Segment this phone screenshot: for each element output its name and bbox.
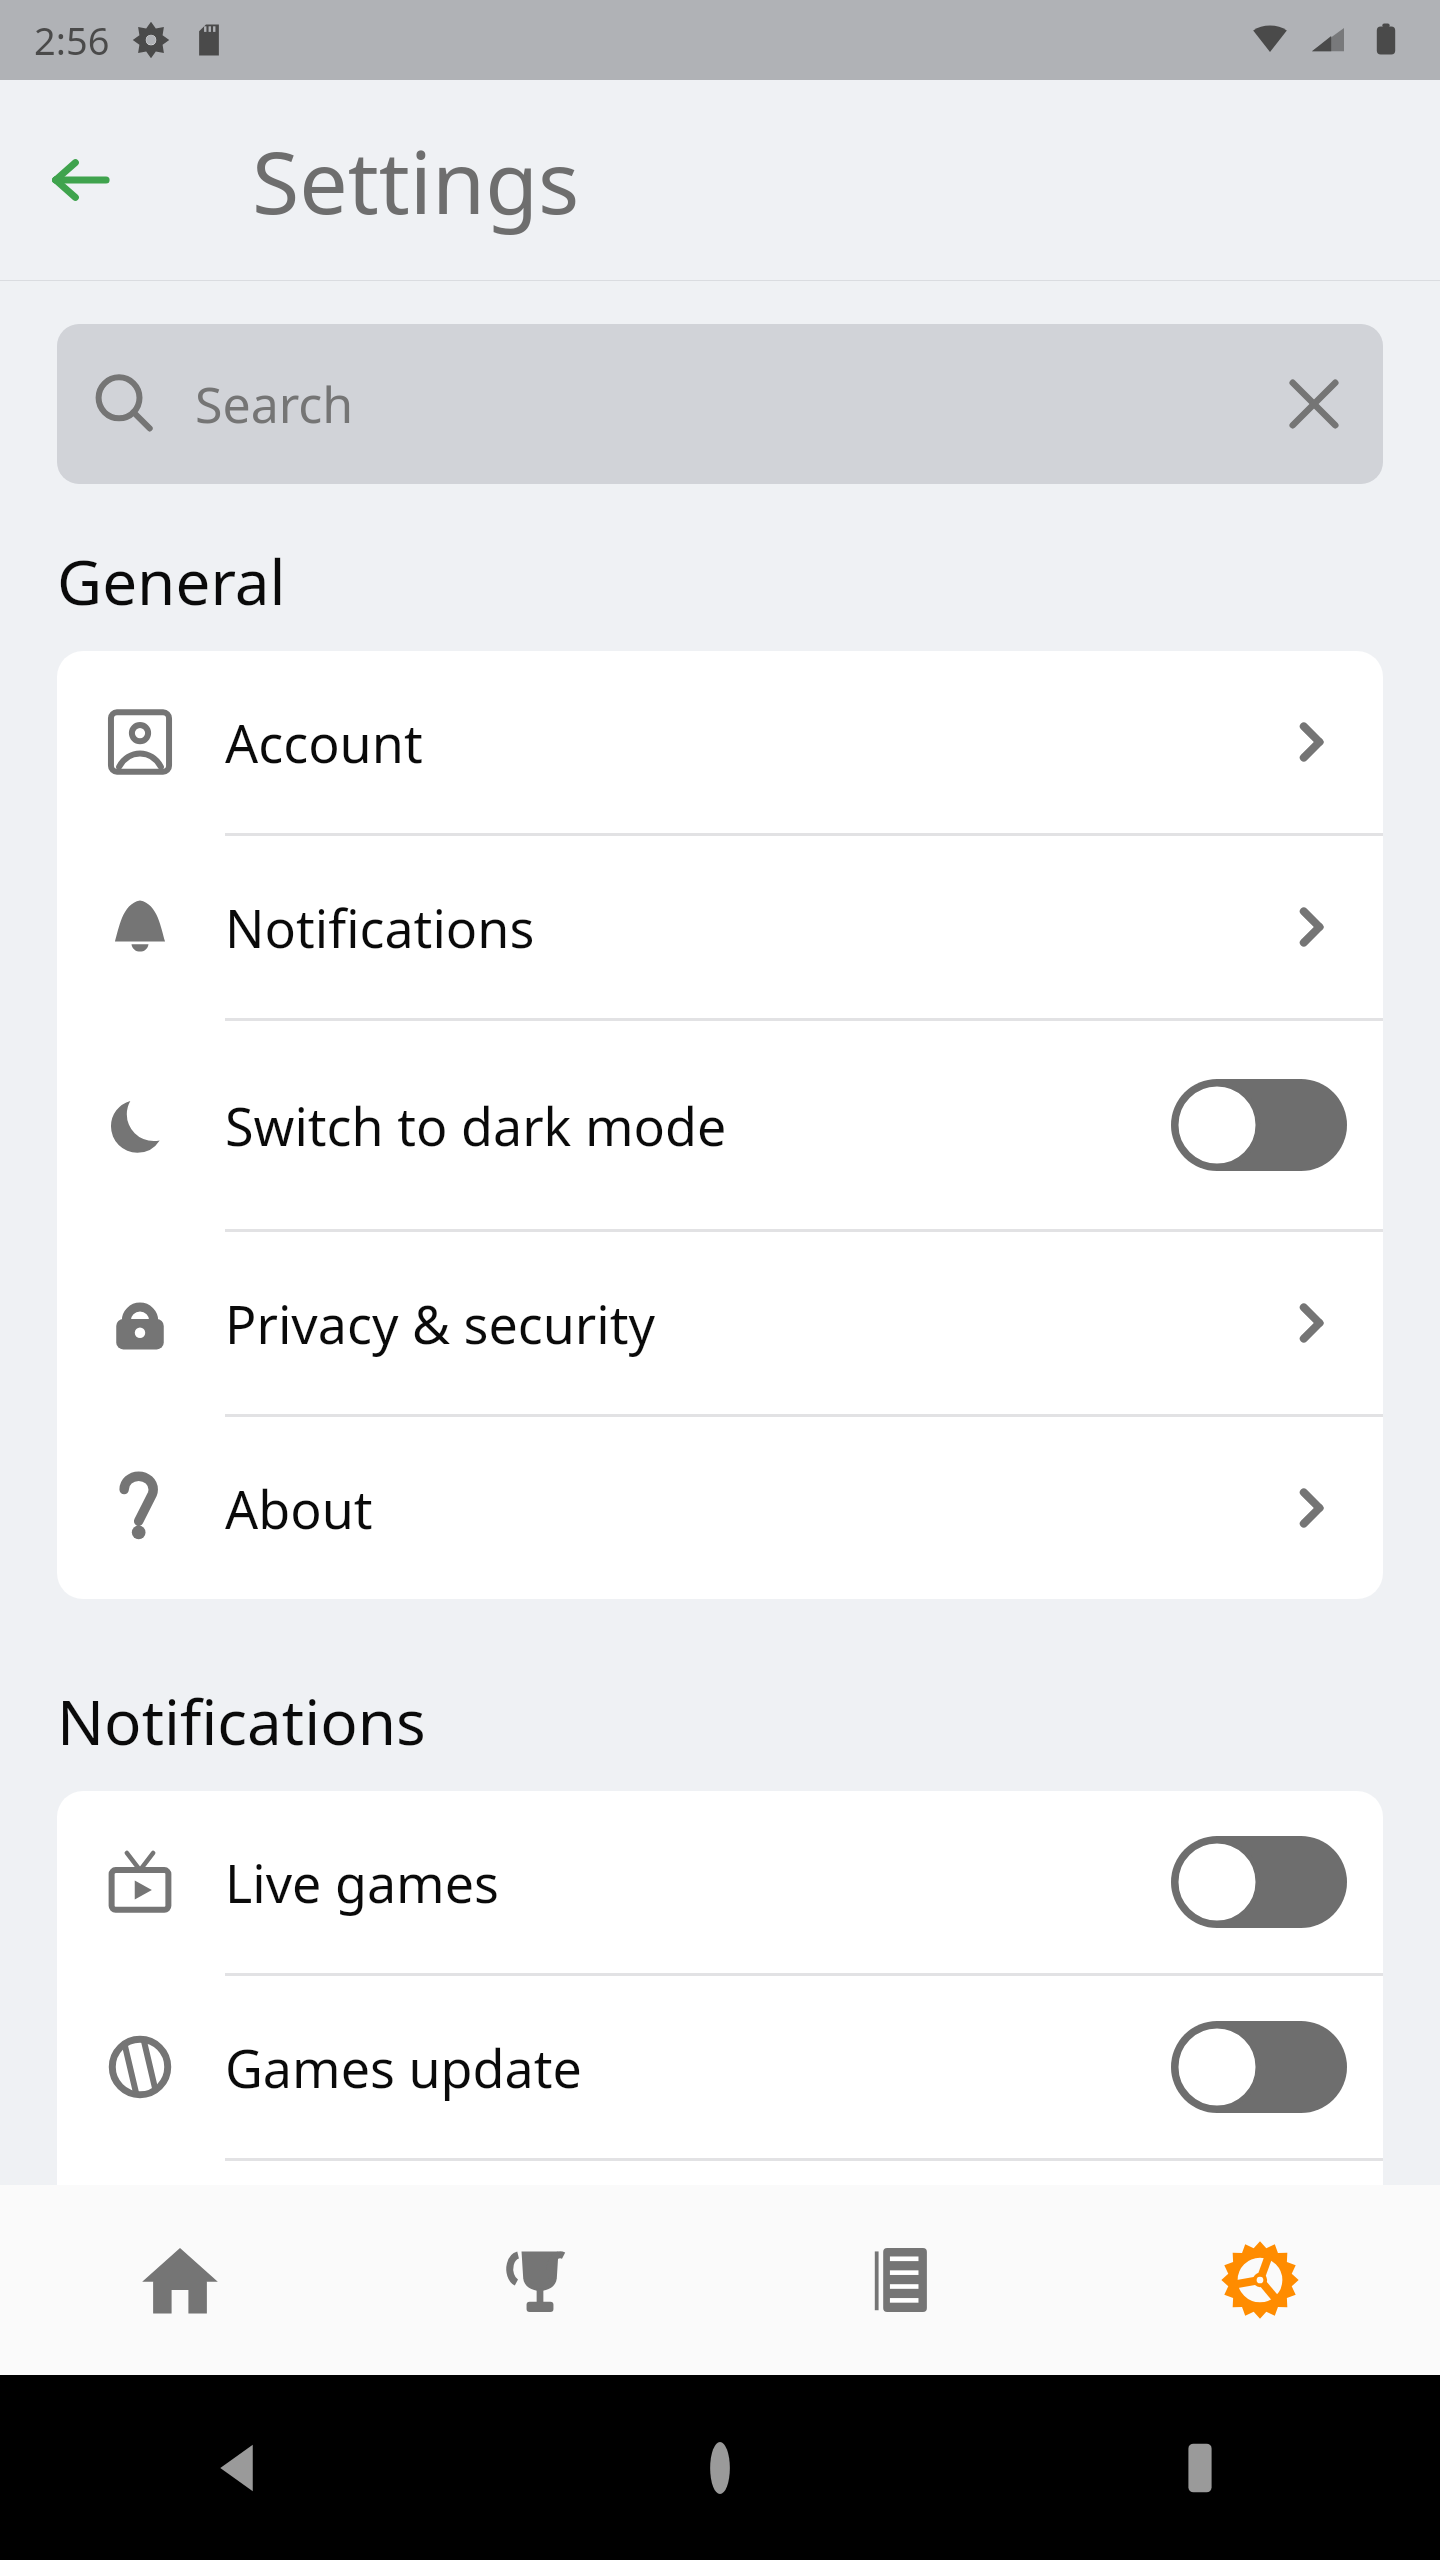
staticText: Notifications (225, 892, 535, 963)
button[interactable]: News (720, 2185, 1080, 2375)
staticText: About (225, 1473, 373, 1544)
button[interactable]: Back (0, 2375, 480, 2560)
button[interactable]: Home (480, 2375, 960, 2560)
staticText: Settings (252, 122, 580, 239)
button[interactable]: About (57, 1417, 1383, 1599)
button[interactable]: Home (0, 2185, 360, 2375)
button[interactable]: Privacy & security (57, 1232, 1383, 1414)
button[interactable]: Live games (57, 1791, 1383, 1973)
button[interactable]: Account (57, 651, 1383, 833)
button[interactable]: Leaderboard (360, 2185, 720, 2375)
staticText: Live games (225, 1847, 499, 1918)
staticText: Switch to dark mode (225, 1090, 727, 1161)
button[interactable]: Notifications (57, 836, 1383, 1018)
button[interactable]: Settings (1080, 2185, 1440, 2375)
staticText: General (57, 539, 286, 623)
staticText: Search (195, 370, 354, 438)
button[interactable]: Transfer news (57, 2161, 1383, 2343)
staticText: Transfer news (225, 2217, 567, 2288)
staticText: Privacy & security (225, 1288, 656, 1359)
button[interactable]: Clear search (1269, 359, 1359, 449)
button[interactable]: Switch to dark mode (57, 1021, 1383, 1229)
staticText: 2:56 (34, 14, 110, 66)
staticText: Games update (225, 2032, 582, 2103)
staticText: Notifications (57, 1679, 426, 1763)
button[interactable]: Live games toggle (1171, 1836, 1347, 1928)
button[interactable]: Recents (960, 2375, 1440, 2560)
button[interactable]: Transfer news toggle (1171, 2206, 1347, 2298)
button[interactable]: Games update (57, 1976, 1383, 2158)
button[interactable]: Back (40, 140, 120, 220)
button[interactable]: Switch to dark mode toggle (1171, 1079, 1347, 1171)
staticText: Account (225, 707, 423, 778)
button[interactable]: Search (57, 324, 1383, 484)
button[interactable]: Games update toggle (1171, 2021, 1347, 2113)
